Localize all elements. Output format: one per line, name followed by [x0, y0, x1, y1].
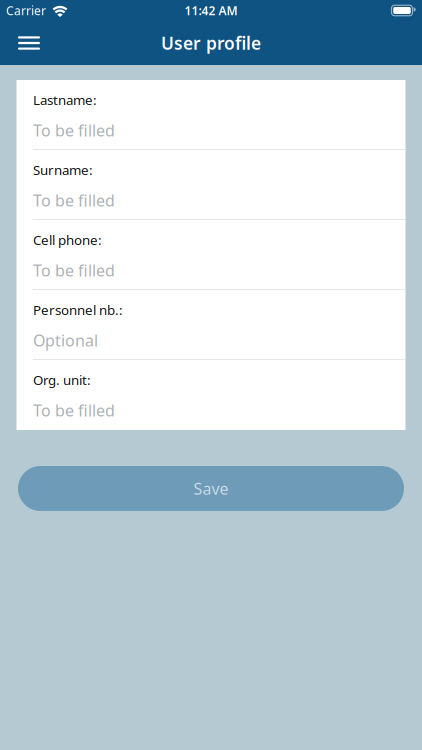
staticText: Carrier	[6, 2, 46, 18]
staticText: Optional	[33, 330, 98, 351]
staticText: To be filled	[33, 120, 115, 141]
staticText: To be filled	[33, 400, 115, 421]
staticText: Lastname:	[33, 91, 97, 109]
button[interactable]: Menu	[0, 21, 52, 65]
button[interactable]: Org. unit:	[16, 360, 405, 430]
button[interactable]: Cell phone:	[16, 220, 405, 290]
button[interactable]: Surname:	[16, 150, 405, 220]
staticText: User profile	[161, 31, 261, 54]
staticText: 11:42 AM	[184, 2, 237, 18]
staticText: Cell phone:	[33, 231, 102, 249]
button[interactable]: Lastname:	[16, 80, 405, 150]
staticText: Personnel nb.:	[33, 301, 123, 319]
staticText: Org. unit:	[33, 371, 91, 389]
button[interactable]: Personnel nb.:	[16, 290, 405, 360]
staticText: Save	[193, 478, 228, 499]
button[interactable]: Save	[18, 466, 404, 511]
staticText: To be filled	[33, 260, 115, 281]
staticText: Surname:	[33, 161, 93, 179]
staticText: To be filled	[33, 190, 115, 211]
